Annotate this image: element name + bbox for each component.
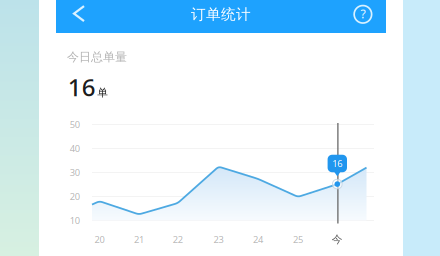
staticText: 今	[332, 233, 343, 246]
staticText: 16	[332, 157, 342, 170]
staticText: 40	[70, 142, 80, 155]
staticText: 25	[293, 233, 303, 246]
button[interactable]: Back	[62, 0, 96, 30]
staticText: 50	[70, 118, 80, 131]
staticText: 30	[70, 166, 80, 179]
button[interactable]: Help	[346, 0, 380, 31]
staticText: 订单统计	[191, 5, 251, 23]
staticText: ?	[360, 6, 365, 22]
staticText: 单	[97, 86, 108, 99]
staticText: 20	[70, 190, 80, 203]
staticText: 16	[68, 71, 96, 103]
staticText: 10	[70, 214, 80, 227]
staticText: 今日总单量	[67, 50, 127, 64]
staticText: 22	[173, 233, 183, 246]
staticText: 21	[134, 233, 144, 246]
staticText: 20	[94, 233, 104, 246]
staticText: 24	[253, 233, 263, 246]
staticText: 23	[214, 233, 224, 246]
